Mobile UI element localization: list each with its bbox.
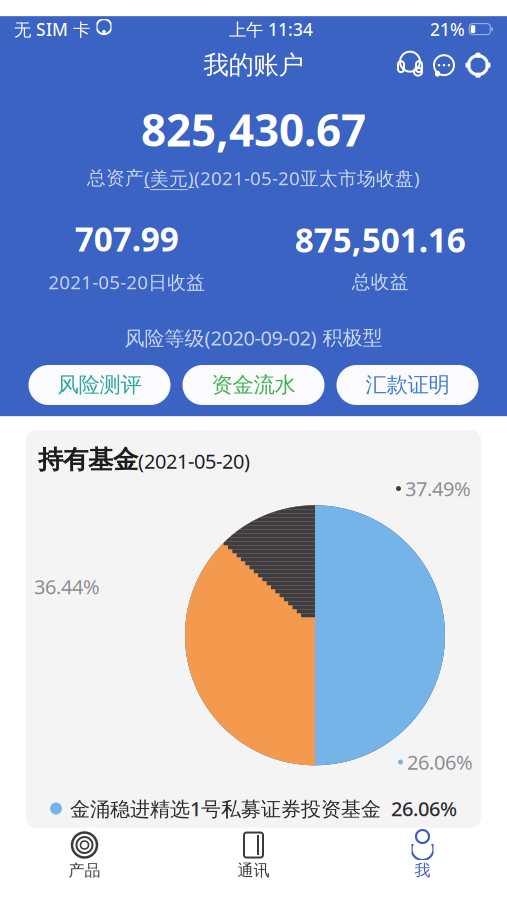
staticText: (2021-05-20亚太市场收盘) [194,166,420,190]
staticText: 26.06% [407,749,473,775]
button[interactable]: 我 [338,828,507,884]
staticText: 汇款证明 [365,372,449,398]
staticText: 875,501.16 [295,217,466,262]
button[interactable]: 产品 [0,828,169,884]
staticText: (美元) [144,166,194,190]
button[interactable]: 汇款证明 [336,365,478,405]
staticText: 持有基金 [38,444,138,475]
staticText: 我 [414,860,430,880]
staticText: 总收益 [352,271,409,293]
staticText: 37.49% [405,475,471,502]
staticText: (2021-05-20) [138,448,250,474]
staticText: 2021-05-20日收益 [48,270,205,294]
staticText: 风险等级(2020-09-02) [124,324,316,351]
staticText: 36.44% [34,573,100,600]
button[interactable]: 资金流水 [182,365,324,405]
staticText: 通讯 [237,860,269,880]
button[interactable]: 通讯 [169,828,338,884]
staticText: 707.99 [75,216,179,261]
staticText: 无 SIM 卡 [14,18,90,41]
staticText: 资金流水 [211,372,295,398]
staticText: 我的账户 [203,50,303,81]
button[interactable]: 设置 [461,48,495,82]
staticText: 825,430.67 [141,100,366,159]
staticText: 上午 11:34 [229,18,313,41]
staticText: 总资产 [87,166,144,189]
staticText: 21% [430,18,465,41]
staticText: 金涌稳进精选1号私募证券投资基金 26.06% [70,795,457,822]
staticText: 风险测评 [57,372,141,398]
button[interactable]: 风险测评 [28,365,170,405]
button[interactable]: 消息 [427,48,461,82]
staticText: 积极型 [322,325,382,350]
staticText: 产品 [68,860,100,880]
button[interactable]: 客服 [393,48,427,82]
